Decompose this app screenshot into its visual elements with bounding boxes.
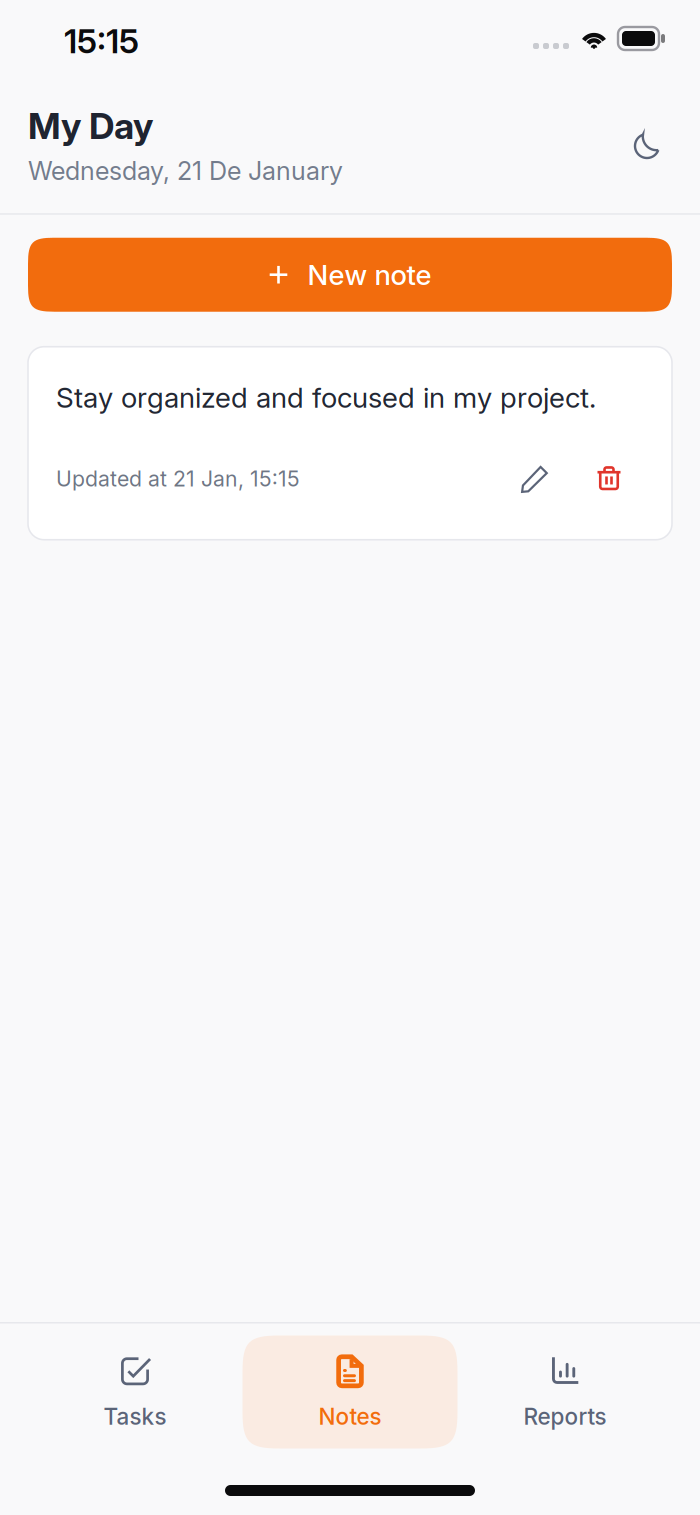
staticText: Notes <box>318 1403 381 1430</box>
button[interactable]: Delete note <box>582 452 636 506</box>
staticText: Reports <box>523 1403 606 1430</box>
button[interactable]: Tasks <box>27 1335 242 1448</box>
button[interactable]: Toggle dark mode <box>618 116 676 174</box>
staticText: Tasks <box>103 1403 166 1430</box>
staticText: Updated at 21 Jan, 15:15 <box>56 466 300 492</box>
staticText: 15:15 <box>64 21 139 61</box>
button[interactable]: Reports <box>457 1335 672 1448</box>
staticText: New note <box>307 258 431 292</box>
staticText: My Day <box>28 104 153 148</box>
button[interactable]: New note <box>28 238 672 312</box>
staticText: Wednesday, 21 De January <box>28 156 343 186</box>
button[interactable]: Edit note <box>508 452 562 506</box>
staticText: Stay organized and focused in my project… <box>56 381 596 415</box>
button[interactable]: Notes <box>242 1335 457 1448</box>
